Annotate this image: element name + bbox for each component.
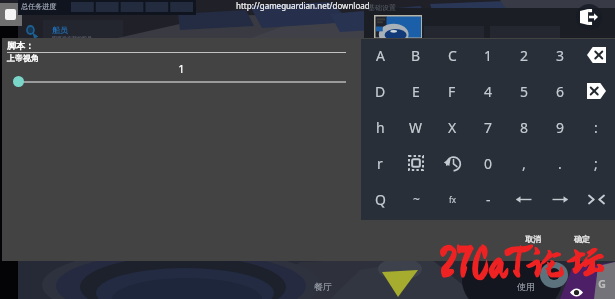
staticText: Q: [375, 190, 386, 209]
button[interactable]: E: [398, 73, 434, 109]
button[interactable]: Slider: [13, 76, 24, 87]
button[interactable]: 1: [470, 37, 506, 73]
staticText: 2: [520, 46, 529, 65]
button[interactable]: 5: [506, 73, 542, 109]
staticText: B: [411, 46, 421, 65]
button[interactable]: 8: [506, 109, 542, 145]
button[interactable]: 6: [542, 73, 578, 109]
staticText: 基础设置: [368, 3, 396, 12]
button[interactable]: F: [434, 73, 470, 109]
button[interactable]: 取消: [513, 228, 553, 250]
button[interactable]: W: [398, 109, 434, 145]
staticText: 即将发布新的船员: [52, 35, 92, 41]
staticText: 餐厅: [314, 281, 332, 292]
staticText: 6: [556, 82, 565, 101]
button[interactable]: D: [362, 73, 398, 109]
button[interactable]: h: [362, 109, 398, 145]
staticText: 0: [484, 154, 493, 173]
staticText: 27CaT论坛: [439, 240, 606, 285]
staticText: 8: [520, 118, 529, 137]
button[interactable]: :: [578, 109, 614, 145]
staticText: A: [376, 46, 385, 65]
staticText: http://gameguardian.net/download: [236, 0, 370, 11]
staticText: 船员: [52, 25, 68, 35]
staticText: ,: [522, 154, 526, 173]
staticText: G: [598, 276, 606, 291]
staticText: 1: [177, 61, 186, 76]
button[interactable]: C: [434, 37, 470, 73]
button[interactable]: 9: [542, 109, 578, 145]
staticText: W: [409, 118, 423, 137]
staticText: 总任务进度: [21, 2, 56, 11]
staticText: 4: [484, 82, 493, 101]
button[interactable]: X: [434, 109, 470, 145]
button[interactable]: B: [398, 37, 434, 73]
button[interactable]: fx: [434, 181, 470, 217]
button[interactable]: Move left: [506, 181, 542, 217]
staticText: fx: [449, 194, 456, 205]
button[interactable]: A: [362, 37, 398, 73]
button[interactable]: Delete: [578, 73, 614, 109]
staticText: 确定: [574, 234, 590, 244]
button[interactable]: Move right: [542, 181, 578, 217]
button[interactable]: Select region: [398, 145, 434, 181]
staticText: F: [448, 82, 456, 101]
staticText: .: [558, 154, 562, 173]
button[interactable]: 3: [542, 37, 578, 73]
button[interactable]: 4: [470, 73, 506, 109]
staticText: ;: [594, 154, 598, 173]
button[interactable]: Q: [362, 181, 398, 217]
staticText: 1: [484, 46, 493, 65]
staticText: 使用: [517, 281, 535, 292]
staticText: 上帝视角: [7, 53, 39, 63]
staticText: 7: [484, 118, 493, 137]
button[interactable]: 7: [470, 109, 506, 145]
staticText: C: [448, 46, 457, 65]
staticText: r: [377, 154, 383, 173]
button[interactable]: Backspace: [578, 37, 614, 73]
button[interactable]: 0: [470, 145, 506, 181]
staticText: D: [375, 82, 386, 101]
staticText: X: [448, 118, 457, 137]
staticText: 5: [520, 82, 529, 101]
staticText: 9: [556, 118, 565, 137]
staticText: 脚本：: [7, 40, 34, 51]
staticText: :: [594, 118, 598, 137]
button[interactable]: -: [470, 181, 506, 217]
button[interactable]: r: [362, 145, 398, 181]
button[interactable]: History: [434, 145, 470, 181]
button[interactable]: ~: [398, 181, 434, 217]
button[interactable]: 2: [506, 37, 542, 73]
staticText: 取消: [525, 234, 541, 244]
button[interactable]: ,: [506, 145, 542, 181]
button[interactable]: .: [542, 145, 578, 181]
button[interactable]: 确定: [562, 228, 602, 250]
button[interactable]: Collapse keyboard: [578, 181, 614, 217]
button[interactable]: ;: [578, 145, 614, 181]
staticText: E: [412, 82, 420, 101]
staticText: ~: [413, 191, 420, 207]
staticText: h: [376, 118, 385, 137]
staticText: 3: [556, 46, 565, 65]
button[interactable]: Exit: [576, 4, 602, 30]
staticText: -: [486, 190, 491, 209]
